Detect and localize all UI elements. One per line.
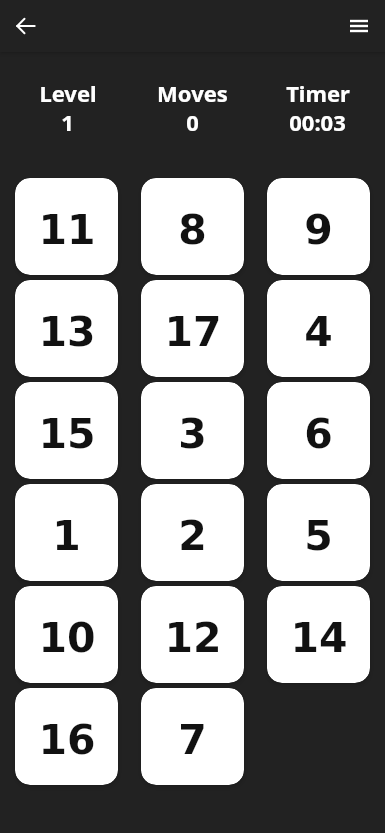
button[interactable]: 15 (15, 382, 118, 479)
button[interactable]: 12 (141, 586, 244, 683)
button[interactable]: Back (8, 8, 44, 44)
button[interactable]: 8 (141, 178, 244, 275)
staticText: 15 (38, 410, 96, 458)
button[interactable]: 16 (15, 688, 118, 785)
button[interactable]: 13 (15, 280, 118, 377)
staticText: 6 (304, 410, 333, 458)
staticText: 13 (38, 308, 96, 356)
button[interactable]: Menu (341, 8, 377, 44)
staticText: 3 (178, 410, 207, 458)
button[interactable]: 9 (267, 178, 370, 275)
staticText: 14 (290, 614, 348, 662)
staticText: 10 (38, 614, 96, 662)
staticText: Level (39, 78, 97, 108)
staticText: 1 (61, 107, 74, 137)
button[interactable]: 7 (141, 688, 244, 785)
staticText: 17 (164, 308, 222, 356)
staticText: Timer (286, 78, 350, 108)
staticText: 1 (52, 512, 81, 560)
button[interactable]: 5 (267, 484, 370, 581)
staticText: 5 (304, 512, 333, 560)
staticText: Moves (157, 78, 228, 108)
button[interactable]: 14 (267, 586, 370, 683)
button[interactable]: 4 (267, 280, 370, 377)
staticText: 0 (186, 107, 199, 137)
button[interactable]: 17 (141, 280, 244, 377)
button[interactable]: 3 (141, 382, 244, 479)
button[interactable]: 11 (15, 178, 118, 275)
button[interactable]: 6 (267, 382, 370, 479)
button[interactable]: 1 (15, 484, 118, 581)
staticText: 00:03 (289, 107, 346, 137)
button[interactable]: 2 (141, 484, 244, 581)
staticText: 11 (38, 206, 96, 254)
staticText: 16 (38, 716, 96, 764)
staticText: 9 (304, 206, 333, 254)
button[interactable]: 10 (15, 586, 118, 683)
staticText: 12 (164, 614, 222, 662)
staticText: 4 (304, 308, 333, 356)
staticText: 8 (178, 206, 207, 254)
staticText: 7 (178, 716, 207, 764)
staticText: 2 (178, 512, 207, 560)
